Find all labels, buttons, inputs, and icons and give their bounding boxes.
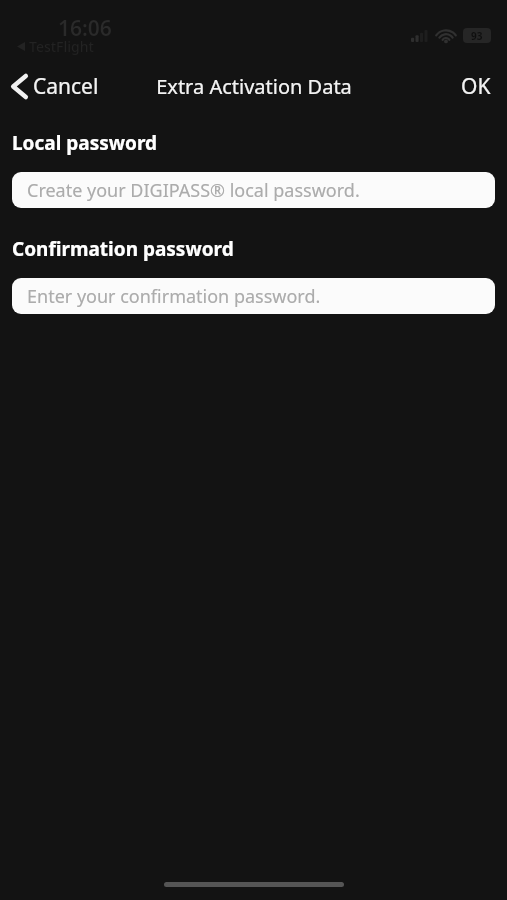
button[interactable]: OK	[445, 66, 507, 107]
staticText: Local password	[12, 130, 158, 156]
staticText: 93	[471, 29, 483, 43]
staticText: Create your DIGIPASS® local password.	[27, 178, 360, 203]
staticText: Extra Activation Data	[156, 73, 352, 100]
staticText: OK	[461, 72, 491, 101]
staticText: Confirmation password	[12, 236, 234, 262]
button[interactable]: Create your DIGIPASS® local password.	[12, 172, 495, 208]
staticText: 16:06	[58, 14, 112, 43]
staticText: TestFlight	[29, 37, 94, 56]
button[interactable]: Cancel	[0, 66, 109, 107]
staticText: Cancel	[33, 72, 99, 101]
button[interactable]: Enter your confirmation password.	[12, 278, 495, 314]
staticText: Enter your confirmation password.	[27, 284, 321, 309]
